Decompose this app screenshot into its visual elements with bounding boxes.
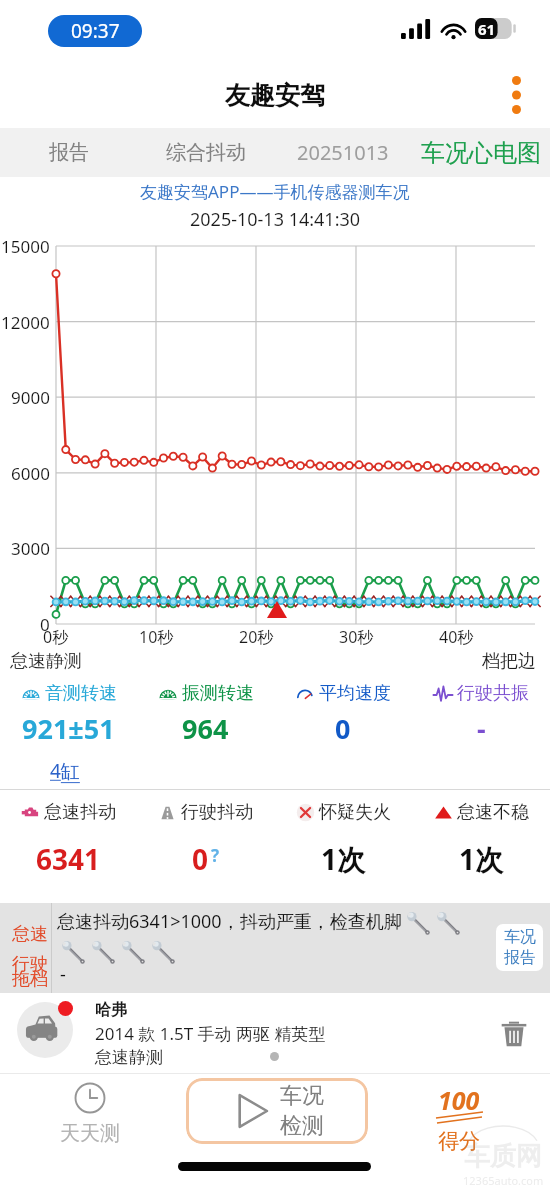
staticText: 921±51 [22,710,115,747]
staticText: 综合抖动 [166,140,246,165]
button[interactable]: 怀疑失火 [274,801,412,878]
staticText: 964 [182,710,229,747]
staticText: 9000 [11,386,50,409]
staticText: 09:37 [71,18,120,44]
button[interactable]: 4缸 [50,758,80,784]
staticText: 车质网 [464,1140,542,1173]
staticText: 100 [438,1083,480,1117]
button[interactable]: More options [494,73,538,117]
staticText: 2014 款 1.5T 手动 两驱 精英型 [95,1022,326,1045]
staticText: 1次 [321,840,366,878]
staticText: 40秒 [439,626,474,648]
staticText: 10秒 [139,626,174,648]
staticText: 0 [192,840,209,878]
staticText: 20251013 [297,139,389,166]
staticText: 12000 [1,311,50,334]
button[interactable]: 行驶共振 [412,682,550,747]
staticText: 报告 [49,140,89,165]
button[interactable]: 综合抖动 [137,128,274,177]
staticText: - [477,710,486,747]
staticText: 行驶 [12,953,48,976]
staticText: 20秒 [239,626,274,648]
staticText: 行驶抖动 [181,801,253,824]
staticText: 拖档 [12,968,48,991]
staticText: 怠速抖动6341>1000，抖动严重，检查机脚 [57,909,402,934]
staticText: 怀疑失火 [319,801,391,824]
staticText: 1次 [459,840,504,878]
staticText: 15000 [1,235,50,258]
staticText: 档把边 [482,650,536,673]
button[interactable]: 天天测 [35,1082,145,1146]
button[interactable]: 行驶抖动 [137,801,274,878]
staticText: ? [211,844,220,867]
button[interactable]: 音测转速 [0,682,137,747]
staticText: 平均速度 [319,682,391,705]
button[interactable]: 哈弗 [0,995,550,1073]
button[interactable]: 车况 [496,924,543,971]
staticText: 怠速不稳 [457,801,529,824]
staticText: 得分 [438,1128,480,1154]
button[interactable]: 报告 [0,128,137,177]
button[interactable]: 怠速抖动 [0,801,137,878]
staticText: 6341 [36,840,101,878]
staticText: 怠速抖动 [44,801,116,824]
staticText: 检测 [280,1112,324,1140]
button[interactable]: 车况 [186,1078,368,1144]
staticText: 车况心电图 [421,138,541,168]
staticText: 0秒 [43,626,69,648]
staticText: 6000 [11,462,50,485]
staticText: 怠速静测 [10,650,82,673]
button[interactable]: 20251013 [274,128,412,177]
staticText: 友趣安驾 [225,80,325,111]
staticText: 怠速 [12,923,48,946]
staticText: 30秒 [339,626,374,648]
staticText: 怠速静测 [95,1047,163,1068]
button[interactable]: 100 [404,1083,514,1154]
staticText: 3000 [11,537,50,560]
staticText: - [60,962,66,987]
staticText: 报告 [504,948,536,968]
staticText: 友趣安驾APP——手机传感器测车况 [140,180,410,203]
staticText: 12365auto.com [463,1173,544,1188]
staticText: 天天测 [60,1121,120,1146]
staticText: 振测转速 [182,682,254,705]
staticText: 2025-10-13 14:41:30 [190,207,361,232]
button[interactable]: 平均速度 [274,682,412,747]
staticText: 0 [40,613,50,636]
staticText: 车况 [280,1082,324,1110]
button[interactable]: Delete [492,1012,536,1056]
staticText: 0 [335,710,351,747]
staticText: 音测转速 [45,682,117,705]
staticText: 哈弗 [95,1000,127,1020]
button[interactable]: 振测转速 [137,682,274,747]
staticText: 61 [478,19,496,39]
staticText: 4缸 [50,758,80,784]
staticText: 行驶共振 [457,682,529,705]
button[interactable]: 车况心电图 [412,128,550,177]
button[interactable]: 怠速不稳 [412,801,550,878]
staticText: 车况 [504,927,536,947]
